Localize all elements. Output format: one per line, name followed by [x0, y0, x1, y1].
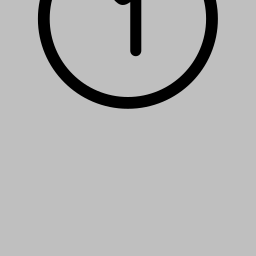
- button[interactable]: Step 1: [0, 0, 256, 256]
